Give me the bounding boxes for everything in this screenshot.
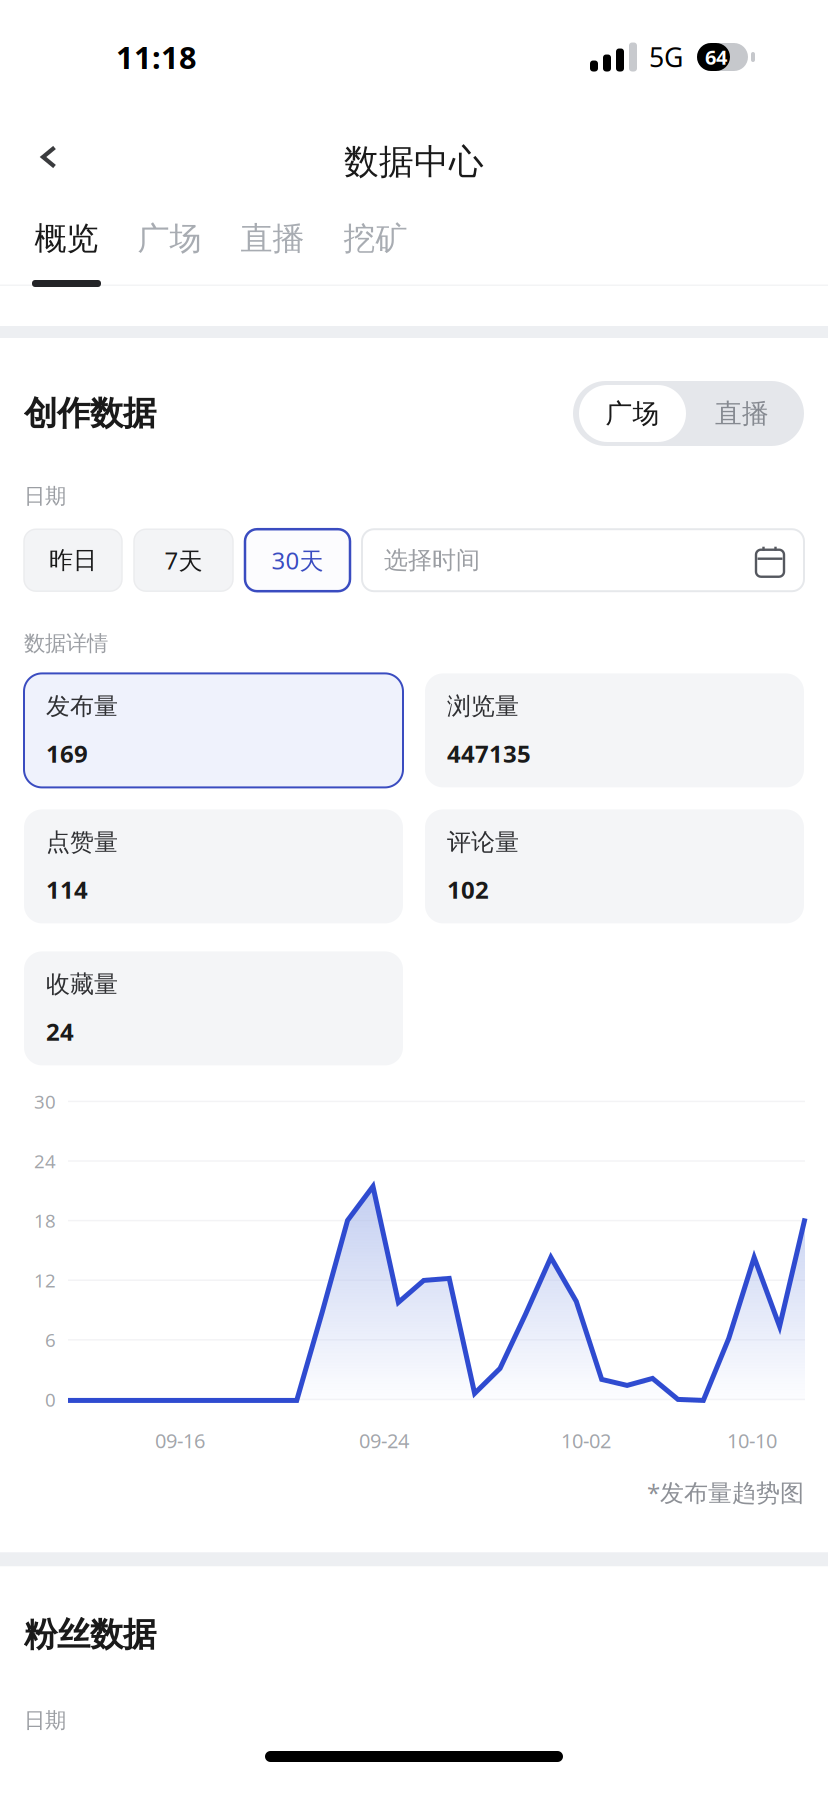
staticText: 447135 bbox=[447, 737, 531, 769]
staticText: 广场 bbox=[137, 219, 201, 258]
staticText: *发布量趋势图 bbox=[647, 1476, 804, 1508]
button[interactable]: 点赞量 bbox=[24, 809, 403, 923]
staticText: 114 bbox=[46, 873, 88, 905]
staticText: 5G bbox=[649, 39, 683, 75]
staticText: 10-02 bbox=[561, 1427, 611, 1454]
staticText: 概览 bbox=[34, 219, 98, 258]
button[interactable]: 浏览量 bbox=[425, 673, 804, 787]
button[interactable]: 7天 bbox=[134, 529, 233, 591]
staticText: 10-10 bbox=[727, 1427, 777, 1454]
staticText: 0 bbox=[45, 1387, 56, 1412]
staticText: 7天 bbox=[164, 544, 202, 576]
staticText: 24 bbox=[46, 1015, 74, 1047]
staticText: 选择时间 bbox=[384, 545, 480, 575]
button[interactable]: 30天 bbox=[245, 529, 350, 591]
staticText: 11:18 bbox=[116, 37, 197, 77]
staticText: 09-16 bbox=[155, 1427, 205, 1454]
staticText: 6 bbox=[45, 1327, 56, 1352]
staticText: 日期 bbox=[24, 1707, 66, 1733]
staticText: 30天 bbox=[271, 544, 323, 576]
staticText: 12 bbox=[34, 1268, 56, 1293]
staticText: 浏览量 bbox=[447, 691, 519, 721]
button[interactable]: 评论量 bbox=[425, 809, 804, 923]
staticText: 24 bbox=[34, 1149, 56, 1173]
staticText: 创作数据 bbox=[24, 393, 156, 434]
staticText: 挖矿 bbox=[343, 219, 407, 258]
staticText: 数据详情 bbox=[24, 630, 108, 656]
staticText: 粉丝数据 bbox=[24, 1614, 156, 1655]
staticText: 评论量 bbox=[447, 827, 519, 857]
button[interactable]: 返回 bbox=[0, 114, 92, 210]
staticText: 102 bbox=[447, 873, 489, 905]
staticText: 64 bbox=[705, 44, 727, 70]
staticText: 09-24 bbox=[359, 1427, 409, 1454]
staticText: 18 bbox=[34, 1208, 56, 1233]
button[interactable]: 广场 bbox=[118, 210, 221, 326]
staticText: 直播 bbox=[240, 219, 304, 258]
button[interactable]: 概览 bbox=[15, 210, 118, 326]
button[interactable]: 收藏量 bbox=[24, 951, 403, 1065]
staticText: 发布量 bbox=[46, 691, 118, 721]
button[interactable]: 挖矿 bbox=[324, 210, 427, 326]
staticText: 广场 bbox=[605, 397, 659, 430]
staticText: 日期 bbox=[24, 483, 66, 509]
staticText: 169 bbox=[46, 737, 88, 769]
button[interactable]: 直播 bbox=[221, 210, 324, 326]
button[interactable]: 选择时间 bbox=[362, 529, 804, 591]
button[interactable]: 昨日 bbox=[24, 529, 122, 591]
button[interactable]: 直播 bbox=[686, 385, 798, 442]
staticText: 直播 bbox=[715, 397, 769, 430]
staticText: 昨日 bbox=[49, 545, 97, 575]
button[interactable]: 广场 bbox=[579, 385, 686, 442]
staticText: 点赞量 bbox=[46, 827, 118, 857]
staticText: 30 bbox=[34, 1089, 56, 1114]
staticText: 数据中心 bbox=[344, 141, 484, 183]
button[interactable]: 发布量 bbox=[24, 673, 403, 787]
staticText: 收藏量 bbox=[46, 969, 118, 999]
